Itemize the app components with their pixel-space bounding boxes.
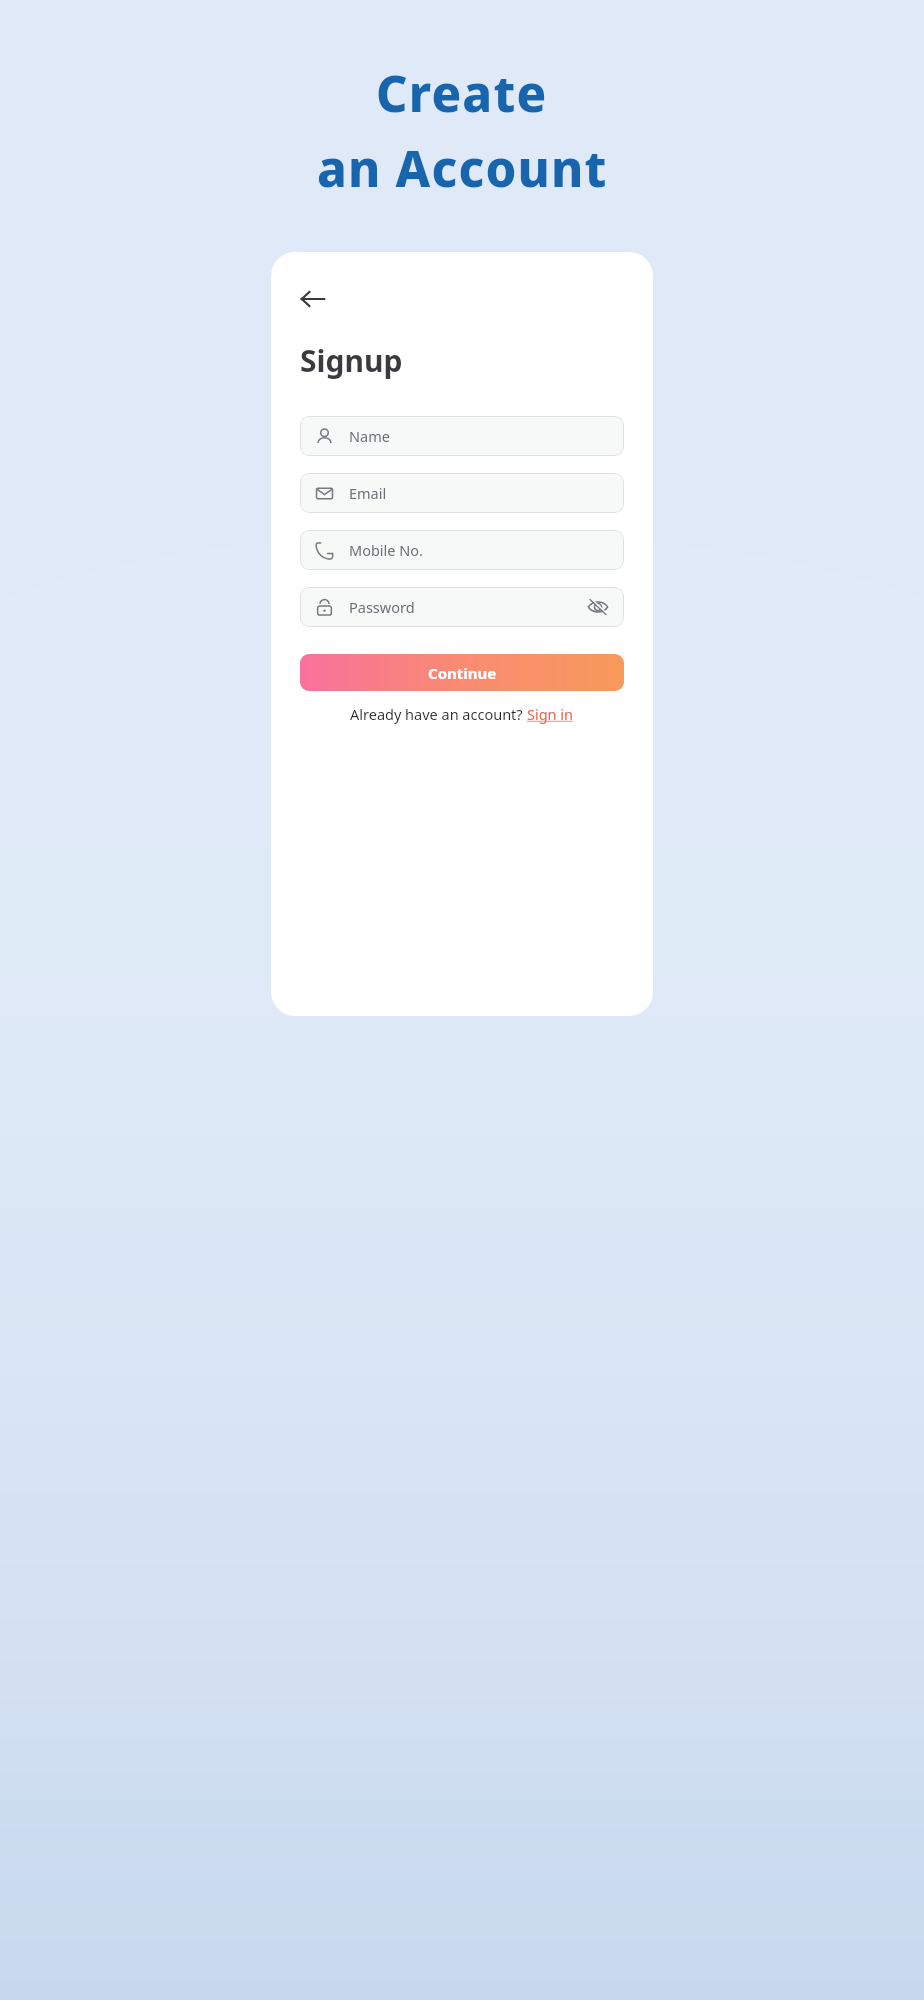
staticText: Already have an account? (350, 704, 527, 724)
button[interactable]: Sign in (527, 704, 574, 724)
button[interactable]: Continue (300, 654, 624, 691)
staticText: Continue (428, 663, 497, 683)
staticText: Mobile No. (349, 540, 423, 560)
staticText: Name (349, 426, 390, 446)
staticText: Password (349, 597, 415, 617)
button[interactable]: Mobile No. (300, 530, 624, 570)
button[interactable]: Password (300, 587, 624, 627)
button[interactable]: Back (300, 279, 340, 319)
staticText: Email (349, 483, 387, 503)
button[interactable]: Email (300, 473, 624, 513)
staticText: Create (376, 60, 548, 127)
staticText: an Account (317, 135, 608, 202)
staticText: Sign in (527, 704, 574, 724)
button[interactable]: Name (300, 416, 624, 456)
button[interactable]: Toggle password visibility (587, 596, 609, 618)
staticText: Signup (300, 340, 403, 381)
